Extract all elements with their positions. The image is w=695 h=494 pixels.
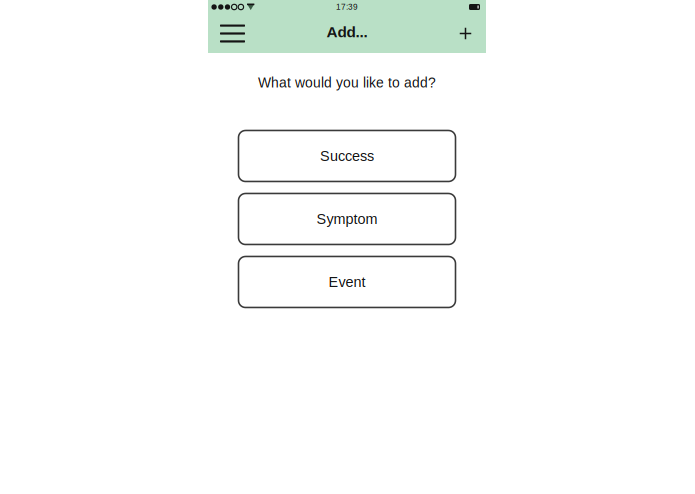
staticText: 17:39 bbox=[336, 2, 358, 12]
button[interactable]: Success bbox=[238, 130, 455, 181]
button[interactable]: Menu bbox=[211, 14, 254, 53]
staticText: Event bbox=[328, 274, 365, 290]
button[interactable]: Symptom bbox=[238, 193, 455, 244]
staticText: Success bbox=[320, 148, 374, 164]
staticText: What would you like to add? bbox=[258, 75, 436, 90]
button[interactable]: Event bbox=[238, 256, 455, 307]
staticText: Symptom bbox=[316, 211, 377, 227]
staticText: Add... bbox=[326, 23, 367, 40]
button[interactable]: Add bbox=[444, 14, 486, 53]
